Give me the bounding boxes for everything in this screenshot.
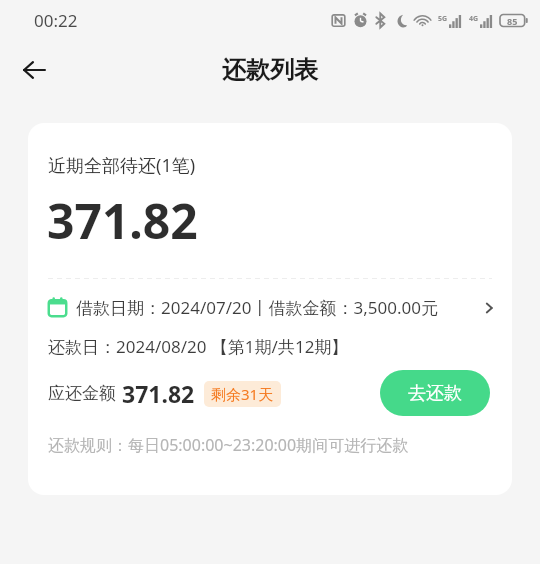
staticText: 5G	[438, 14, 448, 24]
staticText: 还款列表	[222, 55, 318, 85]
staticText: 应还金额	[48, 383, 116, 404]
button[interactable]: Back	[12, 48, 56, 92]
staticText: 去还款	[408, 382, 462, 405]
staticText: 剩余31天	[211, 384, 274, 404]
staticText: 借款日期：2024/07/20丨借款金额：3,500.00元	[76, 296, 438, 319]
staticText: 371.82	[122, 378, 195, 409]
staticText: 00:22	[34, 9, 78, 32]
staticText: 还款规则：每日05:00:00~23:20:00期间可进行还款	[48, 434, 409, 456]
staticText: 还款日：2024/08/20 【第1期/共12期】	[48, 335, 349, 358]
staticText: 4G	[469, 14, 479, 24]
staticText: 85	[507, 15, 518, 27]
button[interactable]: 借款日期：2024/07/20丨借款金额：3,500.00元	[28, 296, 512, 319]
staticText: 371.82	[47, 188, 198, 253]
button[interactable]: 去还款	[380, 370, 490, 416]
staticText: 近期全部待还(1笔)	[48, 153, 196, 178]
